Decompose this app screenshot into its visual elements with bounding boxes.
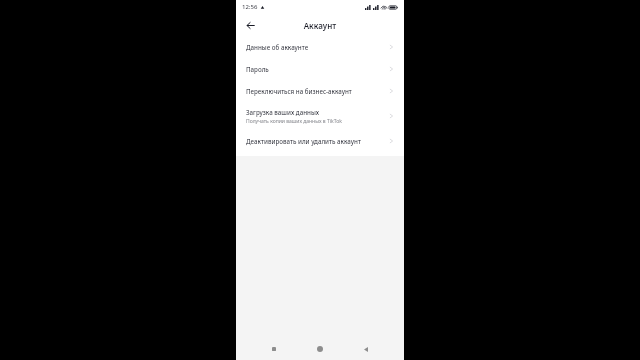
staticText: Данные об аккаунте: [246, 43, 309, 51]
staticText: Получать копии ваших данных в TikTok: [246, 118, 342, 125]
button[interactable]: Home: [312, 341, 328, 357]
staticText: 12:56: [242, 3, 258, 11]
button[interactable]: Back: [358, 341, 374, 357]
staticText: Загрузка ваших данных: [246, 108, 320, 116]
button[interactable]: Пароль: [236, 58, 404, 80]
button[interactable]: Переключиться на бизнес-аккаунт: [236, 80, 404, 102]
button[interactable]: Загрузка ваших данных: [236, 102, 404, 130]
button[interactable]: Данные об аккаунте: [236, 36, 404, 58]
staticText: Пароль: [246, 65, 269, 73]
staticText: Переключиться на бизнес-аккаунт: [246, 87, 352, 95]
button[interactable]: Back: [242, 17, 258, 33]
button[interactable]: Деактивировать или удалить аккаунт: [236, 130, 404, 152]
button[interactable]: Recent apps: [266, 341, 282, 357]
staticText: Аккаунт: [236, 20, 404, 31]
staticText: Деактивировать или удалить аккаунт: [246, 137, 361, 145]
